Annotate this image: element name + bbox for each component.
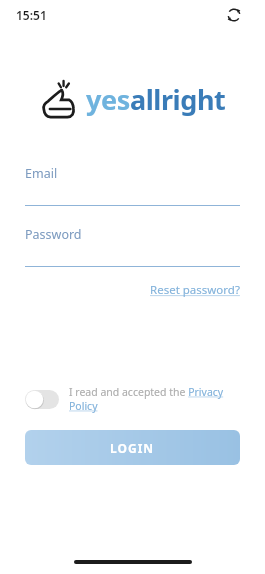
- button[interactable]: I read and accepted the Privacy Policy: [69, 385, 243, 413]
- staticText: Email: [25, 165, 58, 182]
- other: Sync status: [227, 8, 241, 22]
- staticText: yesallright: [86, 81, 226, 118]
- button[interactable]: Password: [25, 226, 240, 267]
- staticText: 15:51: [16, 7, 47, 23]
- staticText: Password: [25, 226, 82, 243]
- staticText: LOGIN: [110, 440, 155, 456]
- button[interactable]: Accept privacy policy toggle: [25, 390, 59, 409]
- button[interactable]: Reset password?: [150, 279, 240, 301]
- button[interactable]: LOGIN: [25, 430, 240, 465]
- staticText: Reset password?: [150, 282, 240, 298]
- button[interactable]: Email: [25, 165, 240, 206]
